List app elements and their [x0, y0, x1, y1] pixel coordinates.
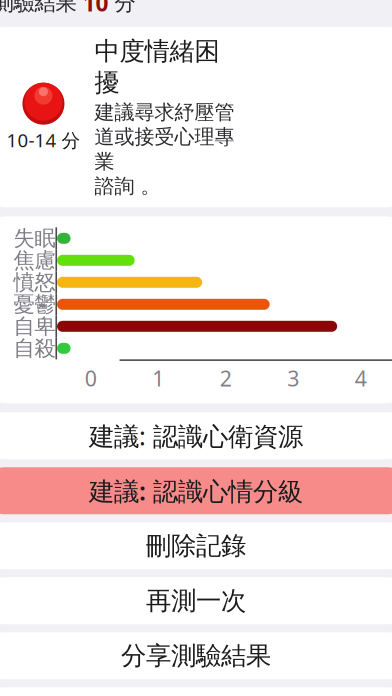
button[interactable]: 分享測驗結果 — [0, 632, 392, 679]
staticText: 建議尋求紓壓管道或接受心理專業 諮詢 。 — [94, 100, 234, 198]
staticText: 2 — [220, 364, 232, 392]
staticText: 分 — [114, 0, 135, 16]
staticText: 憂鬱 — [13, 291, 55, 317]
staticText: 4 — [355, 364, 367, 392]
button[interactable]: 建議: 認識心衛資源 — [0, 412, 392, 459]
staticText: 3 — [287, 364, 299, 392]
staticText: 10 — [82, 0, 108, 18]
staticText: 中度情緒困擾 — [94, 36, 219, 98]
button[interactable]: 建議: 認識心情分級 — [0, 467, 392, 514]
staticText: 憤怒 — [13, 269, 55, 295]
staticText: 建議: 認識心情分級 — [89, 474, 303, 507]
staticText: 自殺 — [13, 335, 55, 361]
staticText: 焦慮 — [13, 247, 55, 273]
staticText: 0 — [85, 364, 97, 392]
staticText: 自卑 — [13, 313, 55, 339]
staticText: 測驗結果 — [0, 0, 76, 16]
staticText: 分享測驗結果 — [121, 640, 271, 671]
button[interactable]: 再測一次 — [0, 577, 392, 624]
staticText: 10-14 分 — [6, 128, 80, 152]
staticText: 再測一次 — [146, 585, 246, 616]
button[interactable]: 刪除記錄 — [0, 522, 392, 569]
staticText: 刪除記錄 — [146, 530, 246, 561]
staticText: 建議: 認識心衛資源 — [89, 419, 303, 452]
staticText: 失眠 — [13, 225, 55, 251]
staticText: 1 — [152, 364, 164, 392]
